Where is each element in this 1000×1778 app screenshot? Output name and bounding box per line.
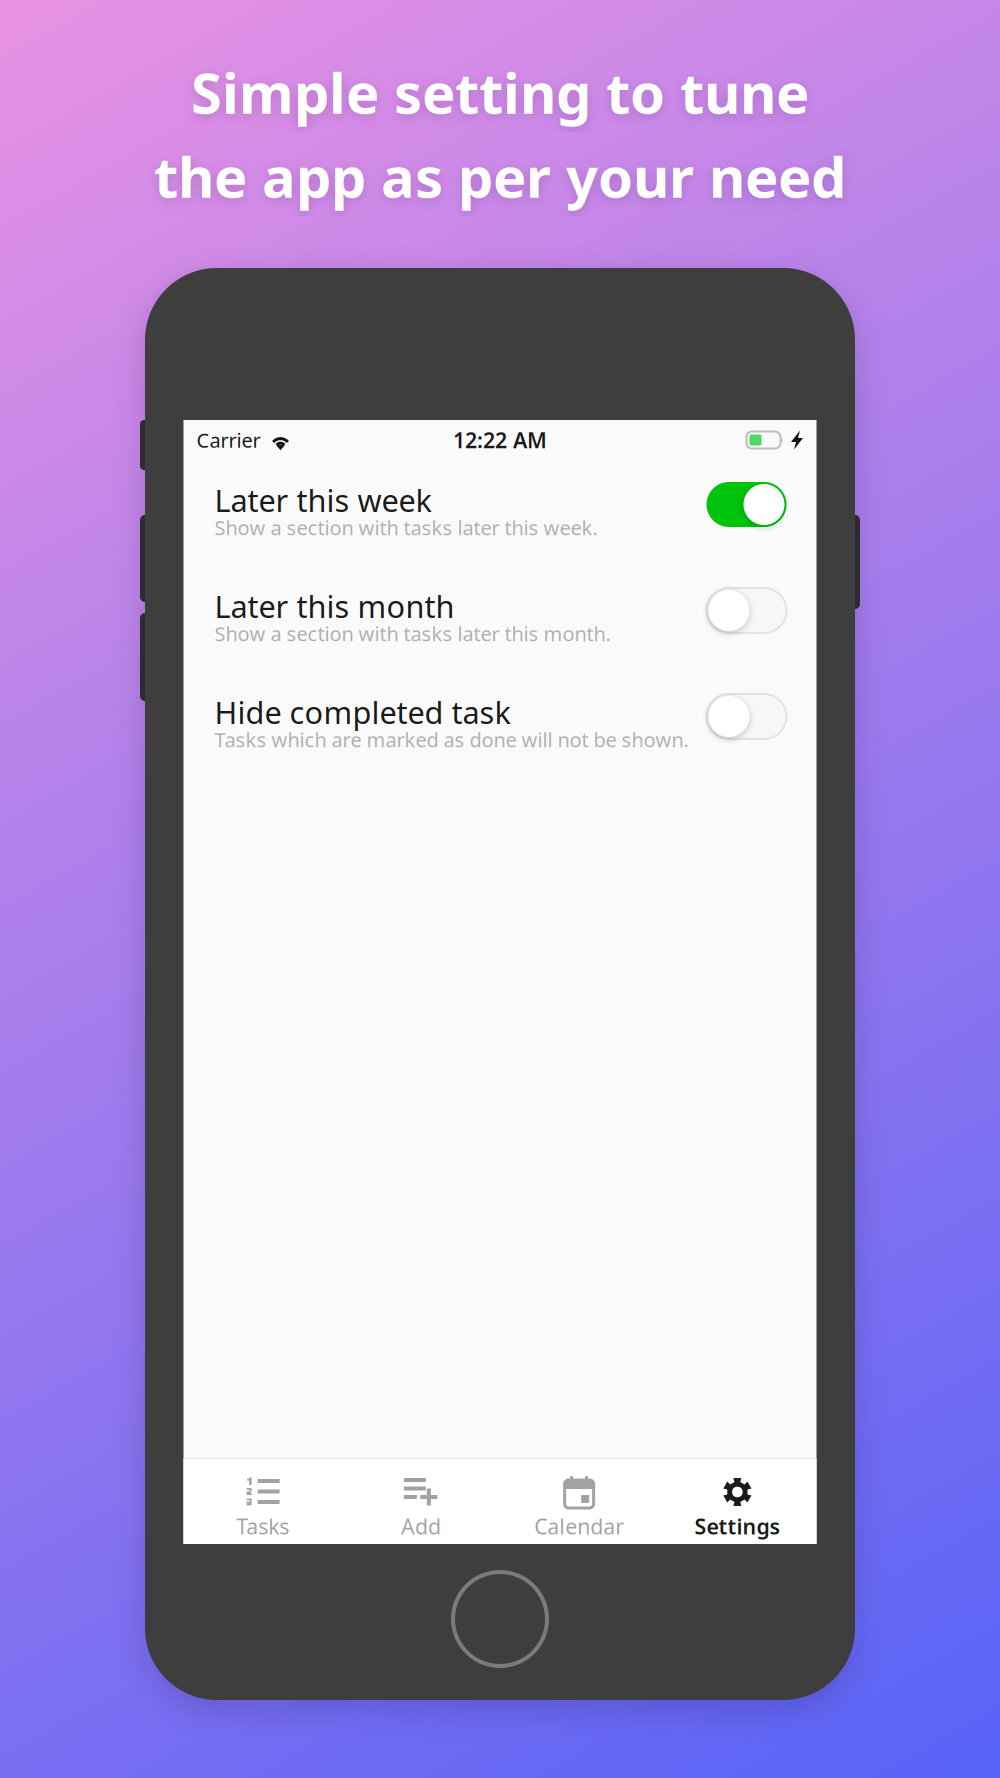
staticText: Hide completed task: [214, 692, 510, 732]
button[interactable]: Later this week: [183, 480, 816, 586]
button[interactable]: Later this week: [706, 482, 786, 527]
staticText: the app as per your need: [154, 139, 846, 213]
button[interactable]: Later this month: [706, 588, 786, 633]
staticText: Simple setting to tune: [191, 55, 809, 129]
staticText: Show a section with tasks later this mon…: [214, 620, 610, 647]
staticText: Later this week: [214, 480, 431, 520]
staticText: Tasks: [236, 1512, 289, 1540]
button[interactable]: Hide completed task: [706, 694, 786, 739]
staticText: Show a section with tasks later this wee…: [214, 514, 597, 541]
staticText: Tasks which are marked as done will not …: [214, 726, 688, 753]
button[interactable]: Hide completed task: [183, 692, 816, 798]
staticText: Settings: [694, 1512, 780, 1540]
staticText: Calendar: [534, 1512, 624, 1540]
staticText: Carrier: [196, 427, 260, 453]
staticText: Later this month: [214, 586, 454, 626]
button[interactable]: Settings: [658, 1459, 816, 1544]
staticText: 12:22 AM: [453, 426, 547, 454]
button[interactable]: Tasks: [183, 1459, 342, 1544]
button[interactable]: Calendar: [500, 1459, 658, 1544]
button[interactable]: Later this month: [183, 586, 816, 692]
button[interactable]: Add: [342, 1459, 500, 1544]
staticText: Add: [401, 1512, 441, 1540]
